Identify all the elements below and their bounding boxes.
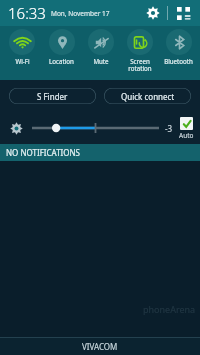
staticText: NO NOTIFICATIONS	[6, 147, 81, 158]
button[interactable]: Location	[42, 26, 81, 80]
button[interactable]: S Finder	[9, 88, 96, 104]
button[interactable]: Brightness settings	[6, 118, 26, 138]
button[interactable]: Bluetooth	[159, 26, 198, 80]
staticText: phoneArena	[143, 303, 196, 315]
staticText: Wi-Fi	[15, 57, 30, 65]
button[interactable]: Settings	[142, 2, 164, 24]
button[interactable]: Brightness slider	[30, 117, 161, 139]
button[interactable]: Wi-Fi	[2, 26, 42, 80]
button[interactable]: Screen rotation	[120, 26, 159, 80]
button[interactable]: Mute	[81, 26, 120, 80]
staticText: S Finder	[37, 91, 68, 102]
staticText: Mon, November 17	[51, 9, 110, 18]
staticText: Location	[49, 57, 74, 65]
staticText: Bluetooth	[164, 57, 193, 65]
staticText: Auto	[179, 131, 194, 140]
staticText: Screen rotation	[128, 57, 152, 73]
staticText: Mute	[93, 57, 109, 65]
staticText: 16:33	[8, 3, 46, 23]
button[interactable]: Edit quick settings	[172, 2, 194, 24]
button[interactable]: Quick connect	[104, 88, 191, 104]
button[interactable]: Auto	[177, 117, 196, 140]
staticText: -3	[165, 123, 173, 134]
staticText: Quick connect	[121, 91, 175, 102]
staticText: VIVACOM	[82, 341, 118, 352]
